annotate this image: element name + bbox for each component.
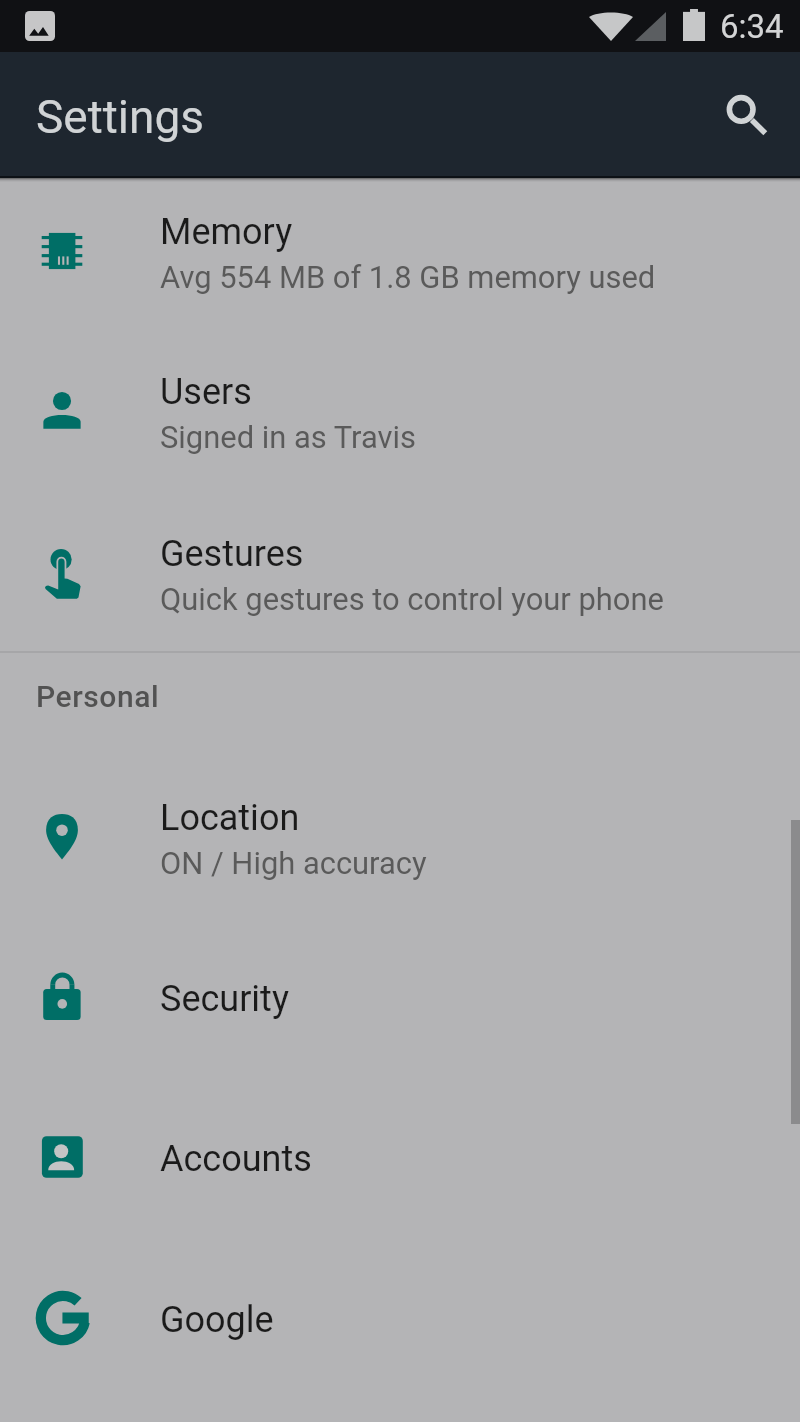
staticText: Memory: [160, 211, 293, 253]
button[interactable]: Users: [0, 331, 800, 491]
button[interactable]: Memory: [0, 171, 800, 331]
button[interactable]: Location: [0, 757, 800, 917]
button[interactable]: Search: [702, 74, 782, 154]
staticText: Signed in as Travis: [160, 419, 416, 455]
button[interactable]: Security: [0, 917, 800, 1077]
staticText: Gestures: [160, 533, 304, 575]
button[interactable]: Accounts: [0, 1077, 800, 1237]
staticText: ON / High accuracy: [160, 845, 427, 881]
staticText: Users: [160, 371, 252, 413]
button[interactable]: Gestures: [0, 493, 800, 653]
staticText: Settings: [36, 90, 204, 144]
staticText: Accounts: [160, 1138, 312, 1180]
staticText: Quick gestures to control your phone: [160, 581, 664, 617]
staticText: Personal: [36, 679, 160, 714]
staticText: Avg 554 MB of 1.8 GB memory used: [160, 259, 656, 295]
staticText: Google: [160, 1299, 274, 1341]
staticText: Security: [160, 978, 289, 1020]
staticText: 6:34: [720, 7, 784, 46]
button[interactable]: Google: [0, 1238, 800, 1398]
staticText: Location: [160, 797, 300, 839]
